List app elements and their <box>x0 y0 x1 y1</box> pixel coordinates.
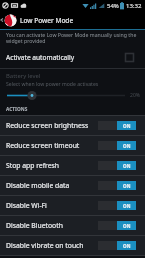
button[interactable]: Disable Wi-Fi <box>0 196 145 216</box>
button[interactable]: Stop app refresh <box>0 156 145 176</box>
staticText: 20% <box>130 92 141 99</box>
staticText: ON <box>123 143 131 149</box>
button[interactable]: Disable vibrate on touch <box>0 236 145 256</box>
button[interactable]: Reduce screen brightness <box>0 116 145 136</box>
button[interactable]: Back <box>0 11 4 29</box>
staticText: ON <box>123 163 131 169</box>
staticText: You can activate Low Power Mode manually… <box>6 31 141 45</box>
staticText: Disable vibrate on touch <box>6 241 84 250</box>
staticText: ON <box>123 243 131 249</box>
staticText: ON <box>123 123 131 129</box>
button[interactable]: Disable Bluetooth <box>0 216 145 236</box>
staticText: Activate automatically <box>6 53 75 62</box>
button[interactable]: Disable mobile data <box>0 176 145 196</box>
staticText: Disable Bluetooth <box>6 221 63 230</box>
staticText: Disable mobile data <box>6 181 70 190</box>
staticText: Low Power Mode <box>20 16 74 25</box>
button[interactable]: Battery level <box>0 69 145 104</box>
staticText: Reduce screen timeout <box>6 141 80 150</box>
staticText: 54% <box>107 2 119 10</box>
staticText: Reduce screen brightness <box>6 121 89 130</box>
staticText: Stop app refresh <box>6 161 59 170</box>
button[interactable]: Activate automatically <box>0 47 145 68</box>
staticText: ON <box>123 183 131 189</box>
staticText: ON <box>123 203 131 209</box>
staticText: Disable Wi-Fi <box>6 201 47 210</box>
staticText: Battery level <box>6 72 41 80</box>
staticText: Select when low power mode activates <box>6 81 99 88</box>
staticText: ACTIONS <box>6 106 28 113</box>
staticText: ON <box>123 223 131 229</box>
staticText: 13:32 <box>126 2 142 10</box>
button[interactable]: Reduce screen timeout <box>0 136 145 156</box>
